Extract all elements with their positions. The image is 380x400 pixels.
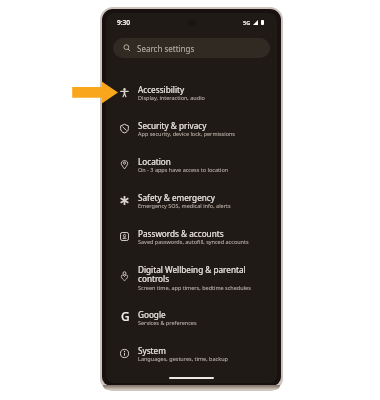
button[interactable]: G (106, 300, 277, 336)
button[interactable]: Passwords & accounts (106, 219, 277, 255)
button[interactable]: Safety & emergency (106, 183, 277, 219)
button[interactable]: Digital Wellbeing & parental controls (106, 255, 277, 300)
staticText: Screen time, app timers, bedtime schedul… (138, 284, 251, 291)
staticText: Languages, gestures, time, backup (138, 355, 228, 362)
other: Battery (261, 20, 264, 25)
staticText: Safety & emergency (138, 192, 215, 203)
staticText: App security, device lock, permissions (138, 130, 236, 137)
staticText: Google (138, 309, 166, 320)
staticText: Passwords & accounts (138, 228, 224, 239)
button[interactable]: Security & privacy (106, 111, 277, 147)
staticText: Accessibility (138, 84, 185, 95)
staticText: On - 3 apps have access to location (138, 166, 229, 173)
other: Signal strength (253, 20, 258, 25)
staticText: 5G (243, 19, 251, 27)
staticText: Display, interaction, audio (138, 94, 205, 101)
staticText: 9:30 (117, 18, 131, 27)
button[interactable]: System (106, 336, 277, 372)
staticText: Emergency SOS, medical info, alerts (138, 202, 231, 209)
button[interactable]: Search settings (113, 38, 270, 58)
staticText: Services & preferences (138, 319, 197, 326)
staticText: Location (138, 156, 171, 167)
staticText: Saved passwords, autofill, synced accoun… (138, 238, 249, 245)
staticText: System (138, 345, 166, 356)
staticText: G (121, 308, 130, 321)
staticText: Security & privacy (138, 120, 207, 131)
button[interactable]: Accessibility (106, 75, 277, 111)
button[interactable]: Location (106, 147, 277, 183)
staticText: Search settings (137, 43, 195, 54)
staticText: Digital Wellbeing & parental controls (138, 264, 269, 285)
